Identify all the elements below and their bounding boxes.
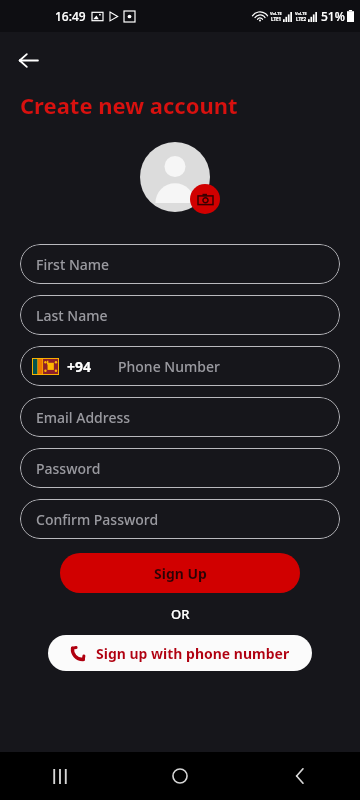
staticText: VoLTE bbox=[270, 11, 282, 16]
staticText: LTE1 bbox=[271, 16, 282, 22]
staticText: Confirm Password bbox=[36, 510, 159, 529]
staticText: First Name bbox=[36, 255, 110, 274]
button[interactable]: Password bbox=[20, 448, 340, 488]
staticText: +94 bbox=[67, 357, 92, 376]
staticText: Sign Up bbox=[154, 564, 207, 583]
button[interactable]: Last Name bbox=[20, 295, 340, 335]
staticText: Email Address bbox=[36, 408, 131, 427]
staticText: LTE2 bbox=[296, 16, 307, 22]
button[interactable]: Sign Up bbox=[60, 553, 300, 593]
button[interactable]: Sign up with phone number bbox=[48, 635, 312, 671]
staticText: Create new account bbox=[20, 90, 238, 120]
staticText: VoLTE bbox=[295, 11, 307, 16]
staticText: Phone Number bbox=[118, 357, 220, 376]
staticText: 16:49 bbox=[55, 8, 86, 24]
button[interactable]: Confirm Password bbox=[20, 499, 340, 539]
staticText: OR bbox=[171, 605, 190, 623]
staticText: 51% bbox=[321, 8, 345, 24]
staticText: Password bbox=[36, 459, 101, 478]
staticText: Last Name bbox=[36, 306, 108, 325]
button[interactable]: Home bbox=[120, 752, 240, 800]
button[interactable]: Recent apps bbox=[0, 752, 120, 800]
button[interactable]: Change profile photo bbox=[140, 142, 220, 222]
button[interactable]: +94 bbox=[20, 346, 340, 386]
button[interactable]: Back bbox=[8, 40, 48, 80]
button[interactable]: Email Address bbox=[20, 397, 340, 437]
button[interactable]: First Name bbox=[20, 244, 340, 284]
staticText: Sign up with phone number bbox=[96, 644, 290, 663]
button[interactable]: Back bbox=[240, 752, 360, 800]
